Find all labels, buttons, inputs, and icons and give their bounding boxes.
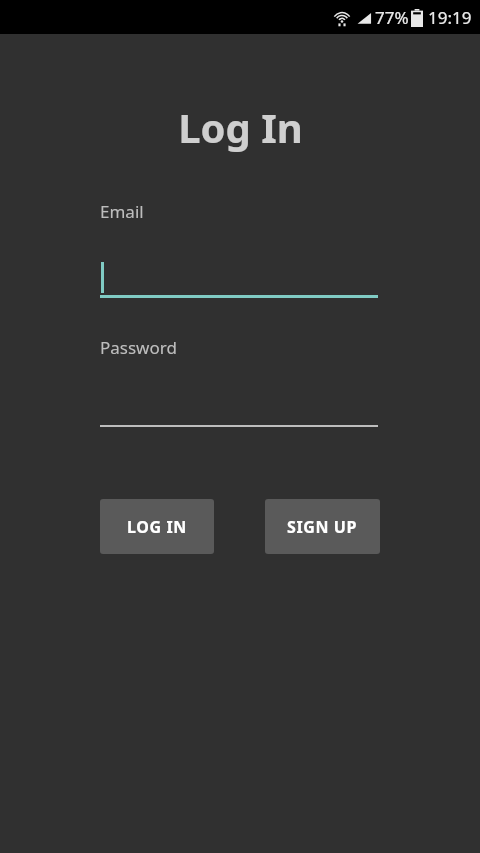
staticText: Password	[100, 336, 177, 359]
staticText: SIGN UP	[287, 516, 358, 538]
button[interactable]: LOG IN	[100, 499, 214, 554]
staticText: LOG IN	[127, 516, 187, 538]
button[interactable]: SIGN UP	[265, 499, 380, 554]
staticText: 77%	[375, 6, 409, 29]
staticText: 19:19	[428, 6, 472, 29]
button[interactable]: Password input field	[0, 413, 480, 427]
staticText: Email	[100, 200, 144, 223]
staticText: Log In	[178, 100, 303, 154]
button[interactable]: Email input field	[0, 261, 480, 297]
